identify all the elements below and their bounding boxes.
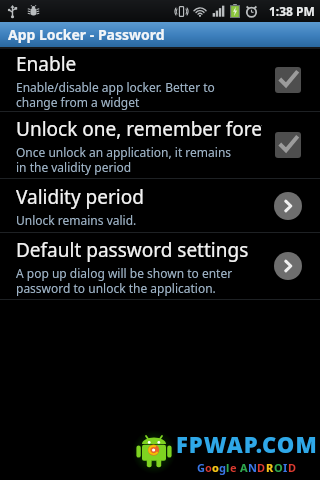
staticText: Default password settings: [16, 237, 249, 263]
staticText: D: [288, 460, 297, 475]
staticText: App Locker - Password: [8, 25, 165, 44]
button[interactable]: Validity period: [0, 179, 320, 232]
staticText: Enable/disable app locker. Better to cha…: [16, 79, 215, 110]
button[interactable]: Toggle setting: [275, 132, 301, 158]
staticText: Validity period: [16, 184, 144, 210]
staticText: O: [274, 460, 283, 475]
staticText: D: [257, 460, 266, 475]
staticText: G: [197, 460, 205, 475]
staticText: N: [248, 460, 257, 475]
button[interactable]: Enable: [0, 49, 320, 111]
staticText: I: [283, 460, 288, 475]
staticText: R: [266, 460, 274, 475]
staticText: Unlock one, remember forever: [16, 116, 262, 142]
button[interactable]: Open setting: [274, 192, 302, 220]
staticText: Enable: [16, 51, 77, 77]
button[interactable]: Default password settings: [0, 233, 320, 299]
staticText: l: [226, 460, 230, 475]
staticText: o: [205, 460, 212, 475]
button[interactable]: Open setting: [274, 252, 302, 280]
button[interactable]: Unlock one, remember forever: [0, 112, 320, 178]
staticText: 1:38 PM: [269, 3, 315, 19]
staticText: g: [219, 460, 226, 475]
staticText: o: [212, 460, 219, 475]
staticText: A: [240, 460, 248, 475]
button[interactable]: Toggle setting: [275, 67, 301, 93]
staticText: A pop up dialog will be shown to enter p…: [16, 265, 233, 296]
staticText: Once unlock an application, it remains i…: [16, 144, 232, 175]
staticText: FPWAP.COM: [176, 429, 318, 459]
staticText: Unlock remains valid.: [16, 212, 137, 228]
staticText: e: [230, 460, 237, 475]
